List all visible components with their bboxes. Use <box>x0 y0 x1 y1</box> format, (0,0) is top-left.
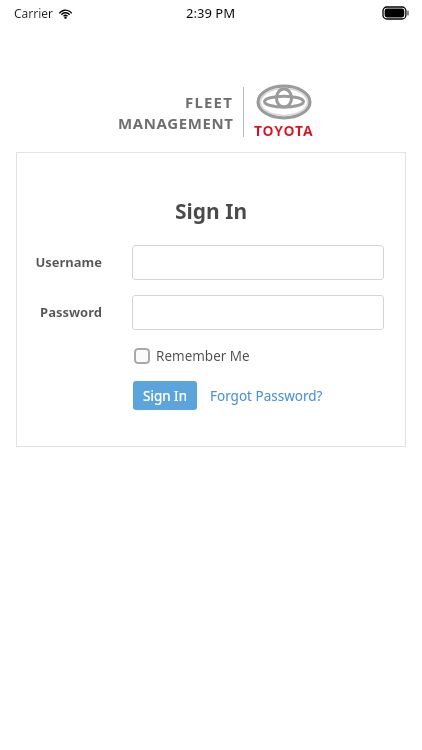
staticText: Username <box>16 253 102 271</box>
staticText: Sign In <box>16 197 406 226</box>
staticText: TOYOTA <box>254 121 314 140</box>
button[interactable]: Remember Me <box>132 345 252 367</box>
button[interactable] <box>132 295 384 330</box>
button[interactable] <box>132 245 384 280</box>
staticText: FLEET <box>185 92 234 112</box>
button[interactable]: Forgot Password? <box>208 383 325 409</box>
staticText: Carrier <box>14 5 54 21</box>
staticText: Forgot Password? <box>210 387 323 405</box>
staticText: Remember Me <box>156 347 250 365</box>
staticText: MANAGEMENT <box>118 113 234 133</box>
staticText: 2:39 PM <box>186 4 236 22</box>
button[interactable]: Sign In <box>133 381 197 410</box>
staticText: Password <box>16 303 102 321</box>
staticText: Sign In <box>143 387 187 405</box>
